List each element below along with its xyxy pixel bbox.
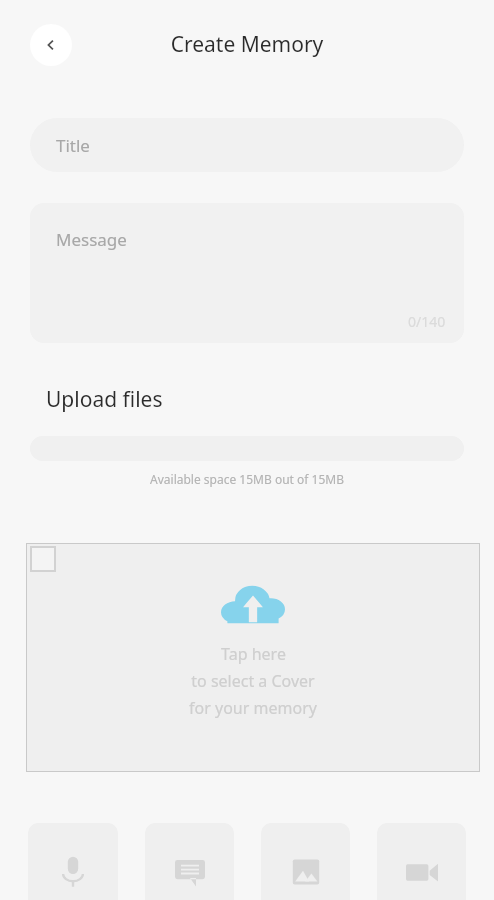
- staticText: Available space 15MB out of 15MB: [30, 471, 464, 487]
- staticText: to select a Cover: [191, 670, 315, 692]
- staticText: Tap here: [221, 643, 286, 665]
- staticText: 0/140: [408, 312, 446, 331]
- button[interactable]: Add text note: [145, 823, 234, 900]
- button[interactable]: Back: [30, 24, 72, 66]
- button[interactable]: Add video: [377, 823, 466, 900]
- button[interactable]: Message: [30, 203, 464, 343]
- staticText: Create Memory: [0, 30, 494, 59]
- button[interactable]: Tap here: [26, 543, 480, 772]
- staticText: Message: [56, 228, 127, 251]
- staticText: for your memory: [189, 697, 317, 719]
- button[interactable]: Add photo: [261, 823, 350, 900]
- button[interactable]: Title: [30, 118, 464, 172]
- button[interactable]: Record audio: [28, 823, 118, 900]
- staticText: Upload files: [46, 385, 163, 414]
- staticText: Title: [56, 134, 90, 157]
